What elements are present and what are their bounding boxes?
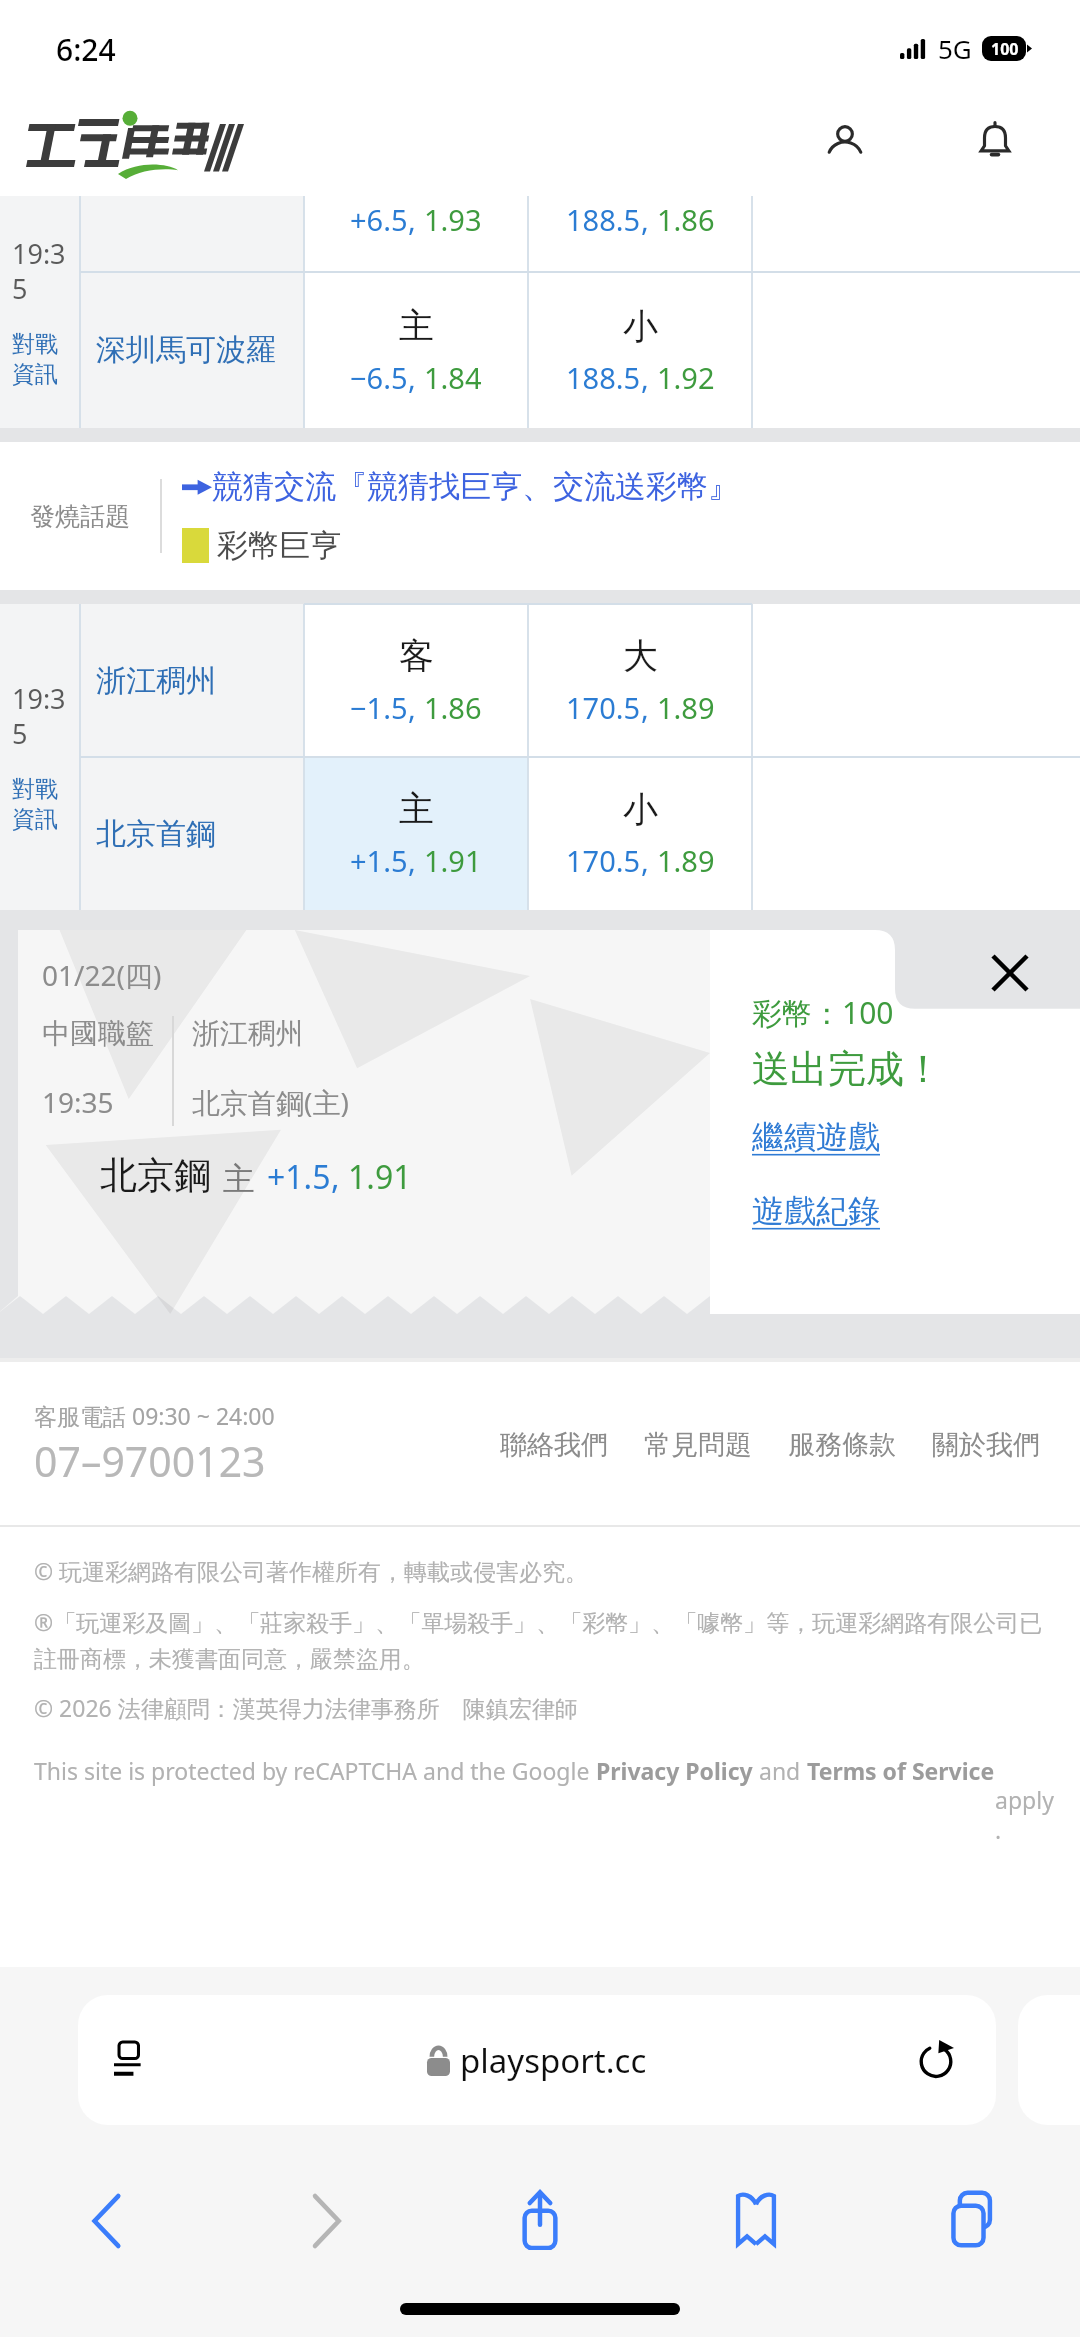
staticText: 主 [399,304,434,348]
staticText: 19:35 [12,680,80,751]
staticText: , [408,688,424,727]
button[interactable]: Terms of Service [807,1755,995,1786]
button[interactable]: Page settings [104,2032,160,2088]
staticText: +1.5 [350,841,408,880]
button[interactable]: 競猜交流『競猜找巨亨、交流送彩幣』 [182,467,739,506]
staticText: © 2026 法律顧問：漢英得力法律事務所 陳鎮宏律師 [34,1692,578,1723]
staticText: −1.5 [350,688,408,727]
staticText: 深圳馬可波羅 [96,331,276,369]
button[interactable]: Back [0,2165,216,2277]
staticText: 188.5 [566,358,641,397]
button[interactable]: 對戰資訊 [12,330,80,389]
button[interactable]: Account [806,103,884,181]
button[interactable]: Tabs [864,2165,1080,2277]
staticText: 1.93 [424,200,482,239]
staticText: 服務條款 [788,1428,896,1462]
staticText: , [641,358,657,397]
staticText: 北京首鋼(主) [192,1083,349,1121]
staticText: 1.86 [424,688,482,727]
staticText: 小 [623,787,658,831]
staticText: , [641,200,657,239]
staticText: This site is protected by reCAPTCHA and … [34,1755,596,1786]
staticText: 主 [223,1159,255,1199]
button[interactable]: Close [940,930,1080,1016]
staticText: −6.5 [350,358,408,397]
button[interactable]: 繼續遊戲 [752,1117,880,1157]
staticText: 6:24 [56,29,116,70]
button[interactable]: +6.5 [304,196,528,272]
staticText: 1.92 [657,358,715,397]
staticText: 1.89 [657,841,715,880]
button[interactable]: 小 [528,272,752,428]
button[interactable]: 小 [528,757,752,910]
staticText: 19:35 [12,235,80,306]
staticText: 188.5 [566,200,641,239]
staticText: 100 [991,38,1019,60]
button[interactable]: 彩幣巨亨 [182,526,341,565]
button[interactable]: 大 [528,604,752,757]
staticText: 北京鋼 [100,1152,211,1199]
staticText: 常見問題 [644,1428,752,1462]
staticText: apply. [995,1755,1056,1846]
button[interactable]: Privacy Policy [596,1755,753,1786]
staticText: , [331,1155,348,1199]
staticText: 5G [938,31,972,66]
staticText: playsport.cc [460,2038,647,2083]
staticText: 1.91 [424,841,482,880]
button[interactable]: 服務條款 [770,1416,914,1474]
staticText: , [641,841,657,880]
staticText: ®「玩運彩及圖」、「莊家殺手」、「單場殺手」、「彩幣」、「噱幣」等，玩運彩網路有… [34,1606,1056,1674]
staticText: 關於我們 [932,1428,1040,1462]
button[interactable]: Notifications [956,103,1034,181]
staticText: © 玩運彩網路有限公司著作權所有，轉載或侵害必究。 [34,1555,589,1586]
staticText: +6.5 [350,200,408,239]
staticText: , [641,688,657,727]
staticText: , [408,200,424,239]
button[interactable]: Forward [216,2165,432,2277]
staticText: and [753,1755,807,1786]
button[interactable]: Page settings [78,1995,996,2125]
staticText: 1.89 [657,688,715,727]
staticText: 07–9700123 [34,1433,266,1489]
staticText: 中國職籃 [42,1016,154,1051]
staticText: 彩幣巨亨 [217,526,341,565]
staticText: 170.5 [566,841,641,880]
staticText: 競猜交流『競猜找巨亨、交流送彩幣』 [212,467,739,506]
staticText: , [408,841,424,880]
button[interactable]: 主 [304,272,528,428]
staticText: 客服電話 09:30 ~ 24:00 [34,1400,275,1431]
staticText: +1.5 [267,1155,331,1199]
button[interactable]: 對戰資訊 [12,775,80,834]
staticText: 浙江稠州 [96,662,216,700]
staticText: 北京首鋼 [96,815,216,853]
staticText: 發燒話題 [30,501,130,532]
staticText: 小 [623,304,658,348]
button[interactable]: 188.5 [528,196,752,272]
staticText: 19:35 [42,1083,114,1121]
staticText: 01/22(四) [42,956,162,994]
button[interactable]: Bookmarks [648,2165,864,2277]
staticText: 浙江稠州 [192,1016,304,1051]
staticText: 1.84 [424,358,482,397]
button[interactable]: Share [432,2165,648,2277]
staticText: 主 [399,787,434,831]
button[interactable]: 關於我們 [914,1416,1058,1474]
button[interactable]: 客 [304,604,528,757]
button[interactable]: 遊戲紀錄 [752,1191,880,1231]
button[interactable]: 主 [304,757,528,910]
button[interactable]: 常見問題 [626,1416,770,1474]
staticText: 170.5 [566,688,641,727]
staticText: 客 [399,634,434,678]
staticText: 送出完成！ [752,1045,942,1093]
staticText: 1.86 [657,200,715,239]
button[interactable]: 聯絡我們 [482,1416,626,1474]
staticText: 彩幣：100 [752,992,894,1033]
staticText: 1.91 [348,1155,412,1199]
button[interactable]: Reload [908,2032,964,2088]
staticText: , [408,358,424,397]
staticText: 聯絡我們 [500,1428,608,1462]
staticText: 大 [623,634,658,678]
button[interactable]: 玩運彩 home [26,110,222,174]
